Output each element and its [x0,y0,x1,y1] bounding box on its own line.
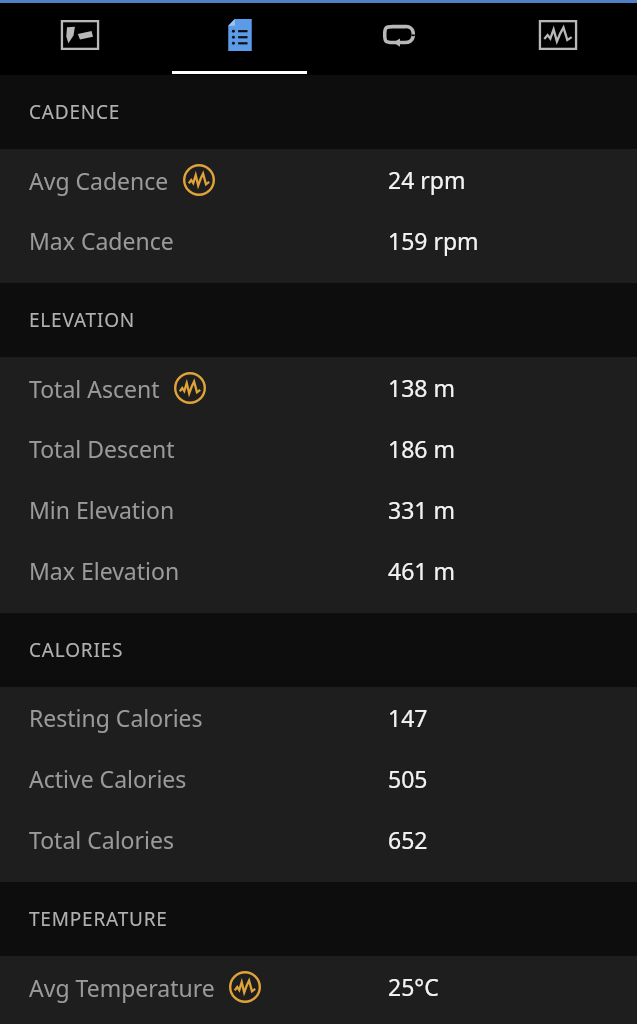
button[interactable]: Active Calories [0,748,637,809]
button[interactable]: Total Calories [0,809,637,870]
staticText: 138 m [388,372,455,403]
staticText: Max Cadence [29,225,174,256]
button[interactable]: Total Descent [0,418,637,479]
button[interactable]: Avg Cadence [0,149,637,210]
staticText: CADENCE [29,99,121,125]
staticText: Min Elevation [29,494,175,525]
button[interactable]: Map [0,3,160,75]
staticText: Active Calories [29,763,187,794]
button[interactable]: Resting Calories [0,687,637,748]
button[interactable]: Max Elevation [0,540,637,601]
button[interactable]: Min Elevation [0,479,637,540]
button[interactable]: Avg Temperature [0,956,637,1017]
staticText: 186 m [388,433,455,464]
staticText: 331 m [388,494,455,525]
staticText: TEMPERATURE [29,906,168,932]
staticText: Total Calories [29,824,174,855]
button[interactable]: Laps [319,3,478,75]
button[interactable]: Max Cadence [0,210,637,271]
staticText: Resting Calories [29,702,203,733]
staticText: Avg Temperature [29,972,215,1003]
staticText: 25°C [388,971,439,1002]
staticText: Avg Cadence [29,165,169,196]
staticText: 461 m [388,555,455,586]
staticText: ELEVATION [29,307,136,333]
staticText: Total Descent [29,433,175,464]
staticText: CALORIES [29,637,124,663]
button[interactable]: Total Ascent [0,357,637,418]
staticText: Max Elevation [29,555,180,586]
button[interactable]: Summary [160,3,319,75]
staticText: 24 rpm [388,164,466,195]
button[interactable]: Charts [478,3,637,75]
staticText: 505 [388,763,428,794]
staticText: 652 [388,824,428,855]
staticText: Total Ascent [29,373,160,404]
staticText: 147 [388,702,428,733]
staticText: 159 rpm [388,225,479,256]
